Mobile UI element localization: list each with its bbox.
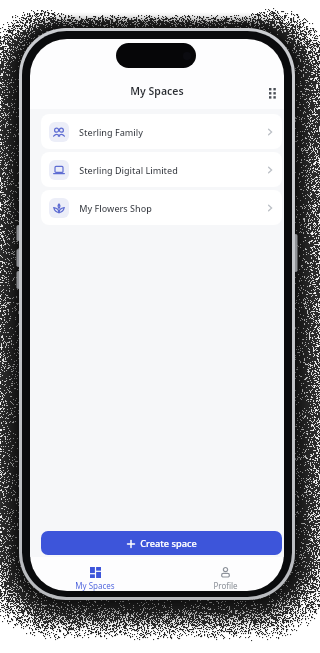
button[interactable]: My Spaces [60, 567, 130, 591]
button[interactable]: My Flowers Shop [41, 190, 282, 225]
staticText: Profile [213, 580, 238, 591]
button[interactable]: Sterling Family [41, 114, 282, 149]
button[interactable]: Sterling Digital Limited [41, 152, 282, 187]
button[interactable]: Profile [190, 567, 260, 591]
button[interactable]: Create space [41, 531, 282, 555]
staticText: Create space [140, 537, 197, 550]
staticText: My Spaces [75, 580, 115, 591]
staticText: My Flowers Shop [79, 202, 152, 214]
staticText: My Spaces [130, 84, 184, 98]
staticText: Sterling Digital Limited [79, 164, 178, 176]
staticText: Sterling Family [79, 126, 143, 138]
button[interactable] [269, 88, 280, 100]
